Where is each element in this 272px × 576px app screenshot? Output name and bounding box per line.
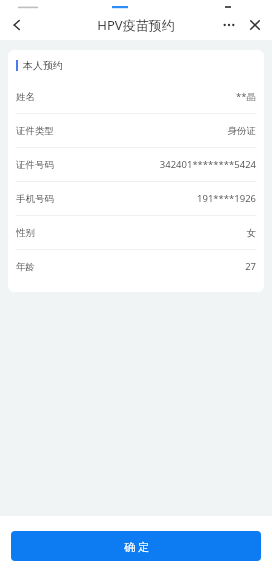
staticText: **晶 <box>236 90 256 103</box>
button[interactable]: 手机号码 <box>8 182 264 215</box>
staticText: 本人预约 <box>23 59 63 72</box>
staticText: HPV疫苗预约 <box>97 16 175 34</box>
staticText: 证件类型 <box>16 125 54 137</box>
staticText: 191****1926 <box>197 192 256 205</box>
staticText: 证件号码 <box>16 159 54 171</box>
button[interactable]: 证件类型 <box>8 114 264 147</box>
staticText: 身份证 <box>227 125 256 137</box>
staticText: 年龄 <box>16 261 35 273</box>
staticText: 手机号码 <box>16 193 54 205</box>
staticText: 27 <box>245 260 256 273</box>
button[interactable]: 年龄 <box>8 250 264 283</box>
staticText: 确 定 <box>124 539 149 554</box>
button[interactable]: 确 定 <box>11 531 261 561</box>
button[interactable]: 性别 <box>8 216 264 249</box>
staticText: 性别 <box>16 227 35 239</box>
staticText: 女 <box>246 227 256 239</box>
button[interactable]: 证件号码 <box>8 148 264 181</box>
staticText: 姓名 <box>16 91 35 103</box>
button[interactable]: More options <box>216 12 242 38</box>
button[interactable]: Close <box>242 12 268 38</box>
button[interactable]: 姓名 <box>8 80 264 113</box>
staticText: 342401********5424 <box>159 158 256 171</box>
button[interactable]: Back <box>0 9 34 40</box>
